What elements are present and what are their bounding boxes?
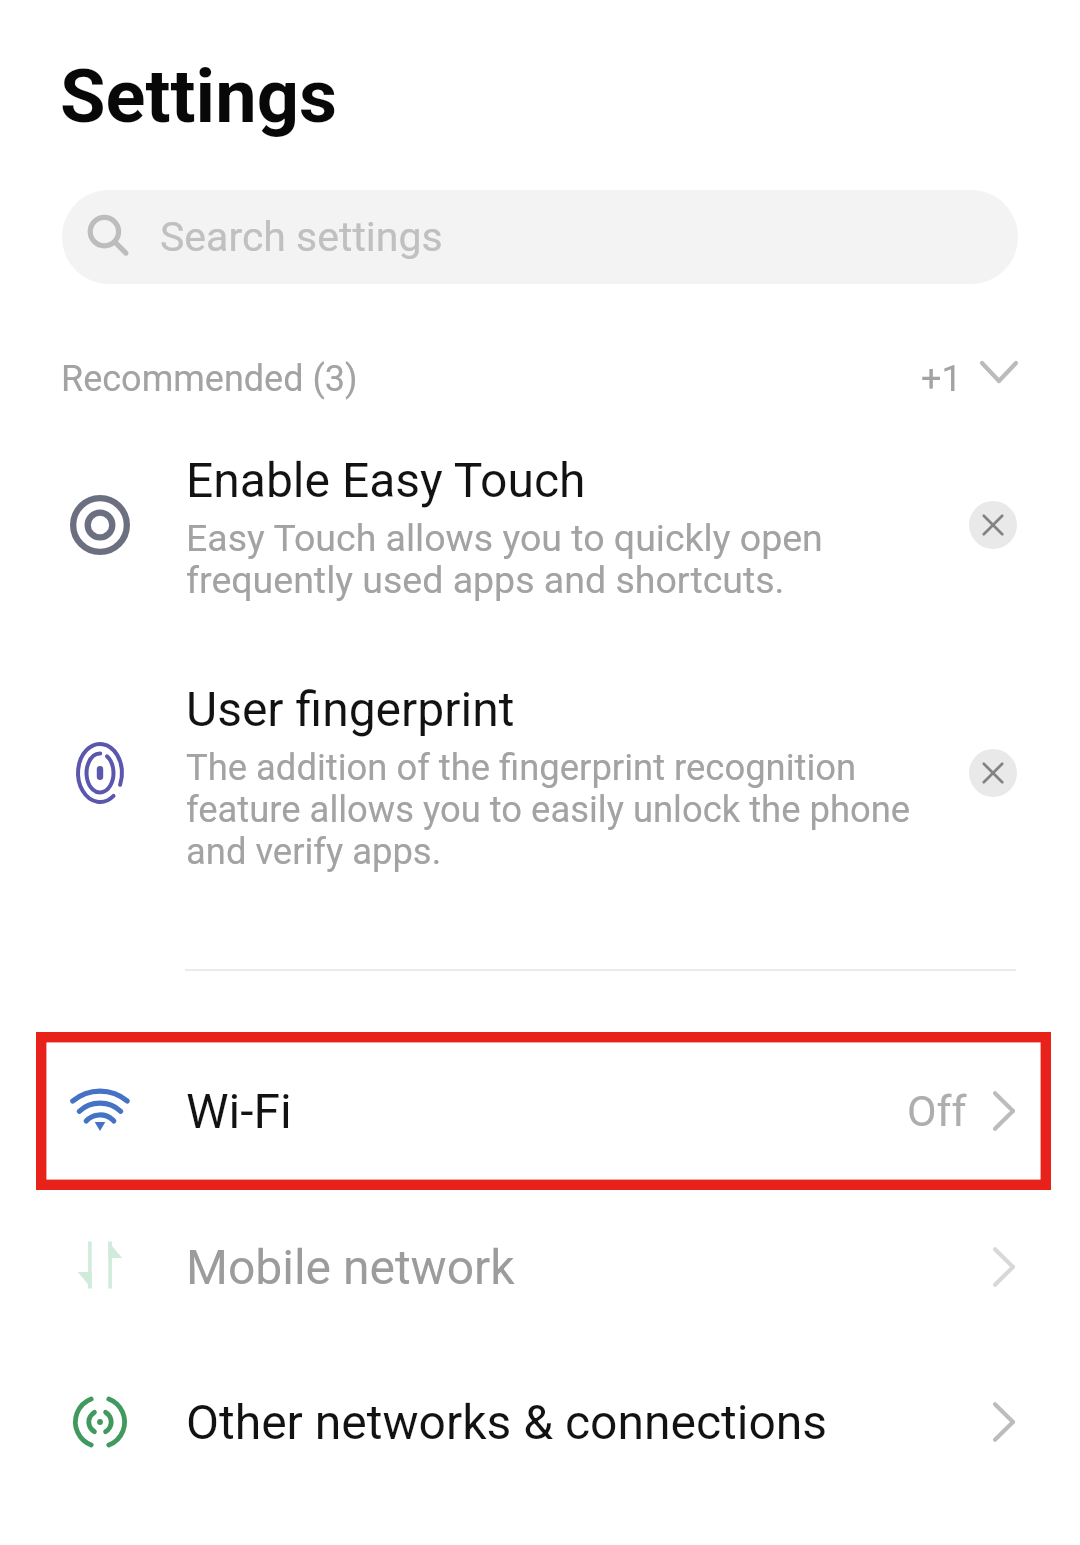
staticText: and verify apps.: [186, 830, 442, 873]
button[interactable]: Wi-Fi: [36, 1033, 1044, 1189]
staticText: Settings: [60, 53, 337, 140]
button[interactable]: Enable Easy Touch: [36, 434, 1044, 598]
staticText: feature allows you to easily unlock the …: [186, 788, 911, 831]
button[interactable]: Search settings: [62, 190, 1018, 284]
button[interactable]: Other networks & connections: [36, 1344, 1044, 1500]
button[interactable]: User fingerprint: [36, 663, 1044, 869]
staticText: Off: [907, 1086, 967, 1136]
button[interactable]: Dismiss suggestion: [969, 749, 1017, 797]
button[interactable]: Dismiss suggestion: [969, 501, 1017, 549]
staticText: Other networks & connections: [186, 1394, 828, 1450]
staticText: frequently used apps and shortcuts.: [186, 558, 785, 602]
staticText: Recommended (3): [61, 358, 358, 400]
button[interactable]: Mobile network: [36, 1189, 1044, 1345]
staticText: Mobile network: [186, 1239, 515, 1295]
staticText: Wi-Fi: [186, 1083, 292, 1139]
staticText: +1: [921, 358, 962, 400]
staticText: User fingerprint: [186, 681, 515, 737]
staticText: Search settings: [160, 213, 443, 261]
button[interactable]: Recommended (3): [61, 351, 1021, 407]
staticText: Enable Easy Touch: [186, 452, 586, 508]
staticText: The addition of the fingerprint recognit…: [186, 746, 857, 789]
staticText: Easy Touch allows you to quickly open: [186, 516, 823, 560]
other: Expand recommendations: [977, 350, 1021, 394]
